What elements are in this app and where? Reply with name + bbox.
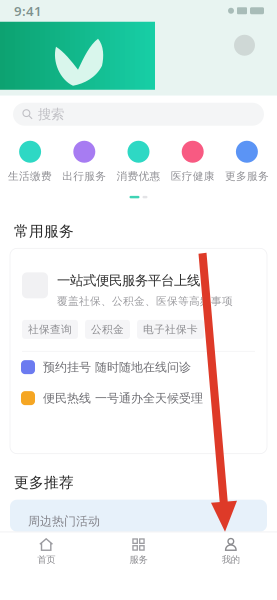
staticText: 9:41 — [14, 2, 42, 20]
staticText: 便民热线 一号通办全天候受理 — [43, 391, 203, 405]
button[interactable]: 搜索 — [0, 96, 277, 126]
button[interactable]: 消费优惠 — [111, 141, 166, 183]
button[interactable]: Profile — [234, 22, 277, 56]
staticText: 周边热门活动 — [28, 514, 100, 529]
staticText: 医疗健康 — [171, 170, 215, 183]
button[interactable]: 生活缴费 — [3, 141, 57, 183]
staticText: 首页 — [37, 554, 55, 565]
staticText: 更多推荐 — [14, 474, 74, 492]
button[interactable]: 周边热门活动 — [0, 500, 277, 532]
button[interactable]: 便民热线 一号通办全天候受理 — [10, 383, 267, 414]
button[interactable]: 首页 — [0, 532, 92, 570]
staticText: 出行服务 — [62, 170, 106, 183]
button[interactable]: 服务 — [92, 532, 185, 570]
staticText: 社保查询 — [28, 323, 72, 336]
staticText: 生活缴费 — [8, 170, 52, 183]
staticText: 服务 — [129, 554, 147, 565]
staticText: 消费优惠 — [116, 170, 160, 183]
staticText: 覆盖社保、公积金、医保等高频事项 — [57, 295, 233, 308]
staticText: 一站式便民服务平台上线 — [57, 272, 200, 289]
staticText: 电子社保卡 — [143, 323, 198, 336]
button[interactable]: 一站式便民服务平台上线 — [10, 248, 267, 308]
staticText: 更多服务 — [225, 170, 269, 183]
button[interactable]: 社保查询 — [22, 320, 78, 339]
button[interactable]: 电子社保卡 — [137, 320, 204, 339]
staticText: 公积金 — [91, 323, 124, 336]
staticText: 预约挂号 随时随地在线问诊 — [43, 360, 191, 374]
button[interactable]: 医疗健康 — [166, 141, 220, 183]
button[interactable]: 预约挂号 随时随地在线问诊 — [10, 352, 267, 383]
button[interactable]: 出行服务 — [57, 141, 111, 183]
button[interactable]: 公积金 — [85, 320, 130, 339]
button[interactable]: 更多服务 — [220, 141, 274, 183]
staticText: 搜索 — [38, 106, 64, 122]
button[interactable]: 我的 — [185, 532, 277, 570]
staticText: 我的 — [222, 554, 240, 565]
staticText: 常用服务 — [14, 222, 74, 240]
